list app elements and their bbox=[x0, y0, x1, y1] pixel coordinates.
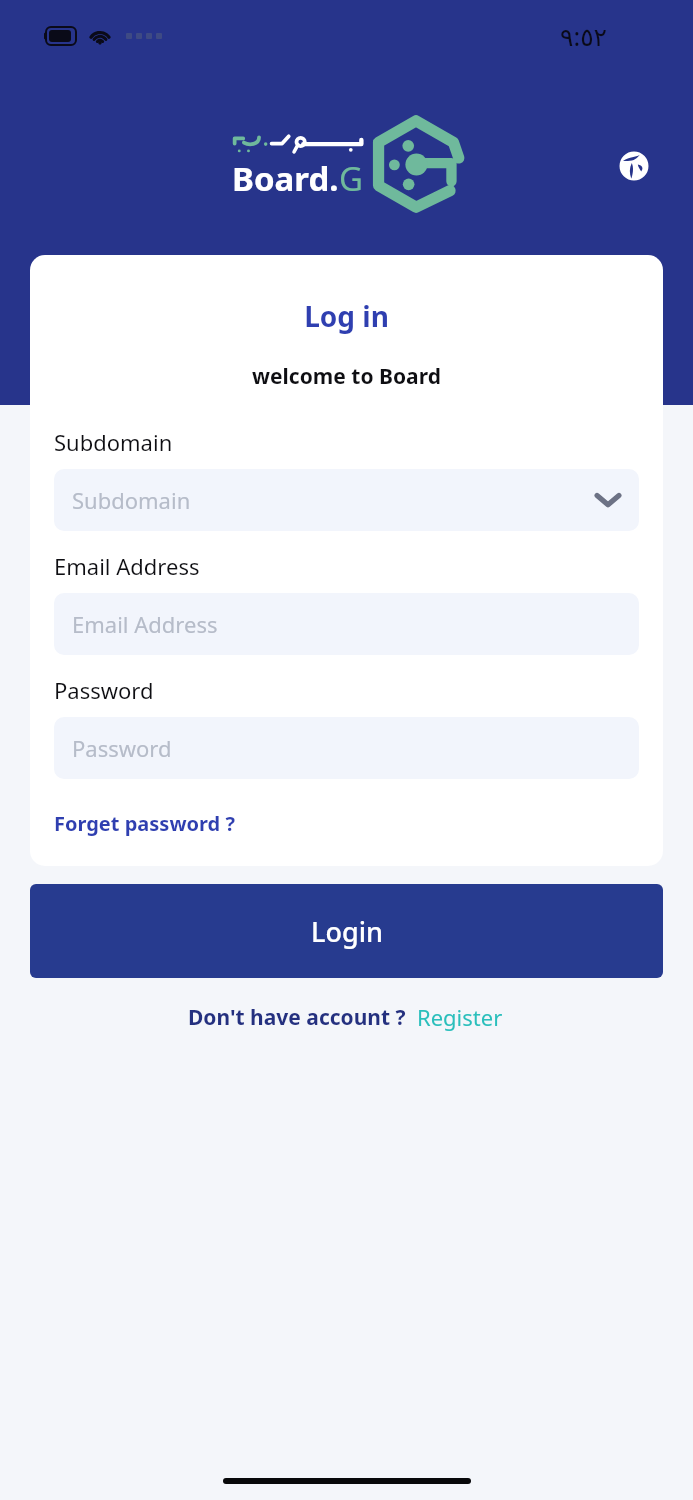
staticText: Board. bbox=[232, 156, 339, 201]
staticText: Login bbox=[311, 913, 383, 950]
staticText: Subdomain bbox=[72, 485, 191, 515]
staticText: Log in bbox=[54, 297, 639, 335]
staticText: Email Address bbox=[54, 551, 200, 581]
staticText: ٩:٥٢ bbox=[560, 19, 607, 53]
staticText: Register bbox=[417, 1002, 503, 1032]
button[interactable]: Change language bbox=[617, 149, 651, 183]
button[interactable]: Email Address bbox=[54, 593, 639, 655]
staticText: G bbox=[339, 156, 364, 201]
staticText: Subdomain bbox=[54, 427, 173, 457]
staticText: Password bbox=[72, 733, 172, 763]
button[interactable]: Login bbox=[30, 884, 663, 978]
staticText: Password bbox=[54, 675, 154, 705]
staticText: Don't have account ? bbox=[188, 1003, 406, 1032]
staticText: Forget password ? bbox=[54, 810, 235, 837]
button[interactable]: Forget password ? bbox=[54, 808, 235, 839]
button[interactable]: Password bbox=[54, 717, 639, 779]
staticText: Email Address bbox=[72, 609, 218, 639]
staticText: welcome to Board bbox=[54, 362, 639, 391]
button[interactable]: Register bbox=[415, 1000, 505, 1034]
button[interactable]: Subdomain bbox=[54, 469, 639, 531]
